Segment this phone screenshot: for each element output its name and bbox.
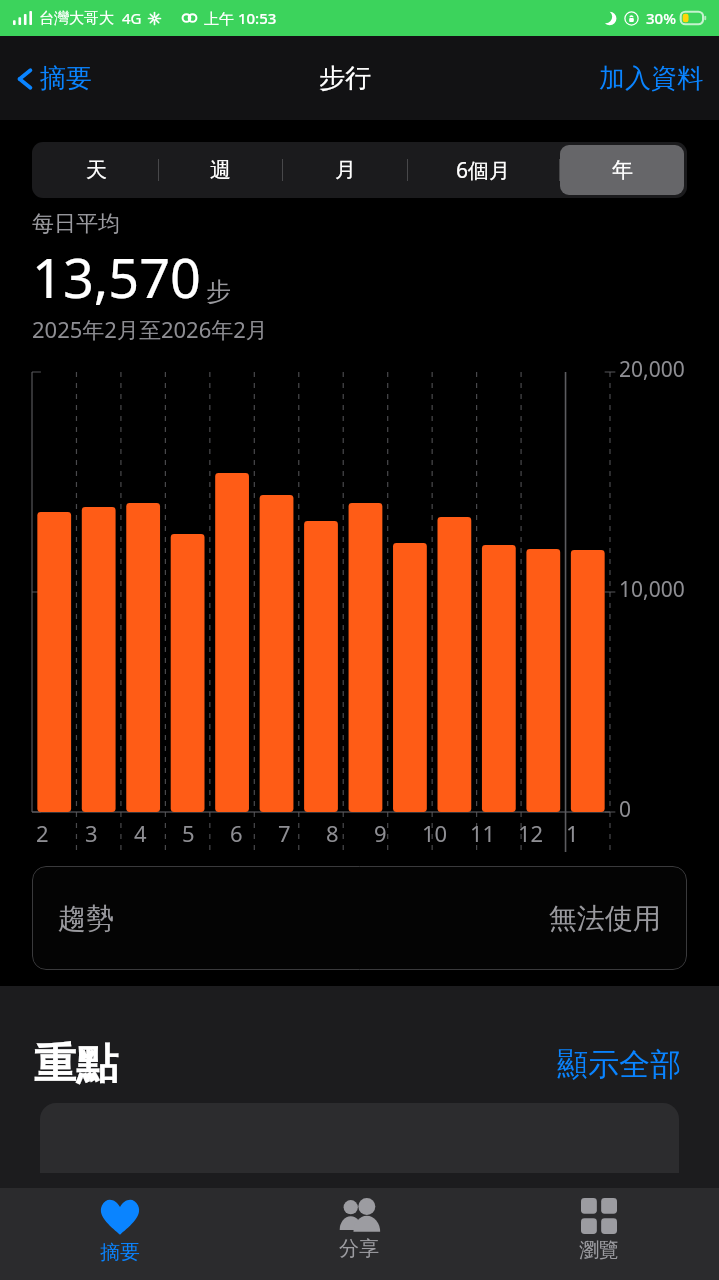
staticText: 年	[612, 157, 633, 183]
staticText: 8	[326, 818, 339, 848]
staticText: 瀏覽	[579, 1238, 619, 1263]
staticText: 天	[86, 157, 107, 183]
staticText: 2	[36, 818, 49, 848]
button[interactable]: 趨勢	[32, 866, 687, 970]
staticText: 加入資料	[599, 62, 703, 95]
staticText: 12	[518, 818, 544, 848]
button[interactable]: 年	[560, 145, 684, 195]
staticText: 30%	[646, 8, 676, 28]
button[interactable]: 6個月	[408, 145, 559, 195]
staticText: 週	[210, 157, 231, 183]
staticText: 6個月	[456, 156, 511, 185]
button[interactable]: 摘要	[0, 1188, 239, 1280]
staticText: 分享	[339, 1236, 379, 1261]
button[interactable]: 月	[283, 145, 407, 195]
staticText: 3	[85, 818, 98, 848]
staticText: 步行	[319, 62, 371, 95]
button[interactable]: 加入資料	[595, 54, 707, 103]
staticText: 10	[422, 818, 448, 848]
staticText: 1	[566, 818, 579, 848]
button[interactable]: 週	[159, 145, 282, 195]
staticText: 上午 10:53	[204, 8, 277, 28]
staticText: 0	[619, 795, 632, 824]
staticText: 無法使用	[549, 901, 661, 936]
staticText: 摘要	[40, 62, 92, 95]
button[interactable]: 顯示全部	[553, 1041, 685, 1088]
staticText: 重點	[34, 1038, 118, 1091]
staticText: 摘要	[100, 1240, 140, 1265]
staticText: 2025年2月至2026年2月	[32, 314, 268, 344]
staticText: 月	[335, 157, 356, 183]
staticText: 7	[278, 818, 291, 848]
button[interactable]: 天	[35, 145, 158, 195]
staticText: 9	[374, 818, 387, 848]
staticText: 趨勢	[58, 901, 114, 936]
staticText: 10,000	[619, 575, 685, 604]
staticText: 4	[134, 818, 147, 848]
staticText: 13,570	[32, 240, 201, 314]
staticText: 每日平均	[32, 210, 120, 238]
staticText: 20,000	[619, 355, 685, 384]
staticText: 4G	[122, 8, 142, 28]
staticText: 5	[182, 818, 195, 848]
button[interactable]: 瀏覽	[479, 1188, 719, 1280]
button[interactable]: 摘要	[12, 54, 96, 103]
staticText: 6	[230, 818, 243, 848]
staticText: 顯示全部	[557, 1045, 681, 1084]
staticText: 11	[470, 818, 496, 848]
button[interactable]: 分享	[239, 1188, 479, 1280]
staticText: 步	[206, 276, 231, 307]
staticText: 台灣大哥大	[39, 9, 114, 28]
